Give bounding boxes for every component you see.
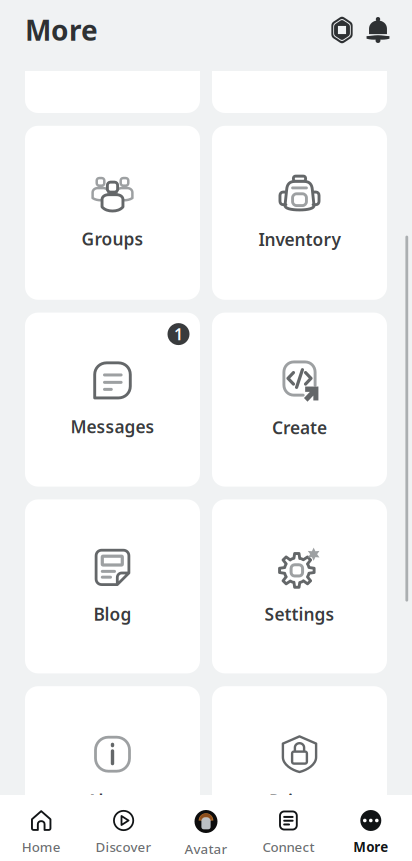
button[interactable]: Roblox (325, 8, 359, 52)
staticText: Groups (81, 227, 143, 250)
staticText: More (25, 11, 98, 49)
button[interactable]: Groups (25, 126, 200, 300)
button[interactable]: Discover (82, 795, 165, 861)
button[interactable]: Blog (25, 499, 200, 673)
button[interactable]: Settings (212, 499, 387, 673)
staticText: Connect (262, 838, 314, 856)
staticText: Settings (264, 602, 334, 625)
staticText: Messages (70, 415, 154, 438)
staticText: Privacy (269, 789, 330, 812)
button[interactable]: Avatar (212, 0, 387, 113)
staticText: Friends (81, 22, 144, 45)
staticText: Inventory (258, 228, 340, 251)
button[interactable]: Home (0, 795, 82, 861)
button[interactable]: More (330, 795, 412, 861)
button[interactable]: Messages (25, 313, 200, 487)
button[interactable]: Notifications (362, 8, 394, 52)
button[interactable]: Connect (247, 795, 330, 861)
staticText: About (86, 789, 138, 812)
staticText: 1 (174, 323, 183, 345)
staticText: Home (22, 838, 61, 856)
button[interactable]: Friends (25, 0, 200, 113)
staticText: More (353, 838, 388, 856)
staticText: Blog (93, 602, 131, 625)
button[interactable]: About (25, 686, 200, 860)
staticText: Avatar (184, 840, 227, 858)
button[interactable]: Inventory (212, 126, 387, 300)
button[interactable]: Create (212, 313, 387, 487)
staticText: Create (272, 416, 327, 439)
button[interactable]: Avatar (165, 795, 247, 861)
staticText: Discover (96, 838, 152, 856)
button[interactable]: Privacy (212, 686, 387, 860)
